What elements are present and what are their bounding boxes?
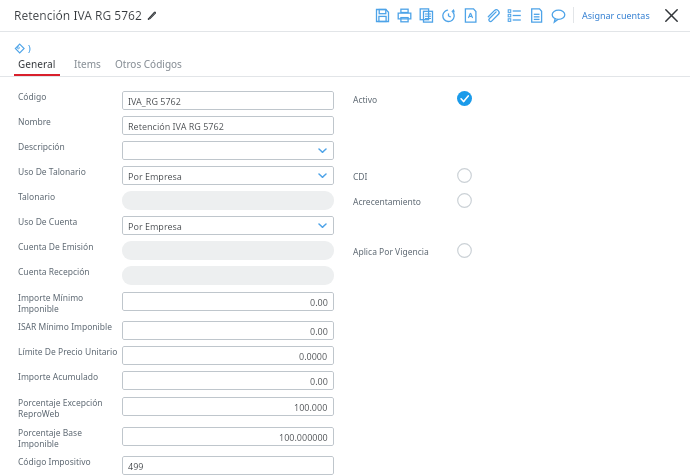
- staticText: Acrecentamiento: [353, 196, 422, 208]
- button[interactable]: [122, 141, 334, 160]
- button[interactable]: Items: [74, 57, 101, 71]
- button[interactable]: CDI: [457, 168, 472, 183]
- staticText: CDI: [353, 171, 368, 183]
- button[interactable]: Aplica Por Vigencia: [457, 243, 472, 258]
- staticText: Por Empresa: [128, 170, 182, 182]
- staticText: Items: [74, 57, 101, 71]
- staticText: Cuenta De Emisión: [18, 241, 94, 253]
- button[interactable]: Copiar: [415, 4, 437, 26]
- button[interactable]: Por Empresa: [122, 166, 334, 185]
- staticText: Retención IVA RG 5762: [128, 120, 224, 132]
- button[interactable]: Editar título: [146, 10, 157, 21]
- button[interactable]: Cerrar: [660, 4, 682, 26]
- button[interactable]: Asignar cuentas: [582, 9, 650, 21]
- staticText: ): [28, 42, 31, 54]
- button[interactable]: 100.000000: [122, 427, 334, 446]
- staticText: Aplica Por Vigencia: [353, 246, 429, 258]
- button[interactable]: Notas: [525, 4, 547, 26]
- staticText: Importe Acumulado: [18, 371, 99, 383]
- staticText: 100.000000: [279, 431, 328, 443]
- staticText: 0.0000: [299, 350, 328, 362]
- button[interactable]: 0.0000: [122, 346, 334, 365]
- staticText: 0.00: [310, 375, 328, 387]
- button[interactable]: 499: [122, 456, 334, 475]
- button[interactable]: Historial: [437, 4, 459, 26]
- button[interactable]: Otros Códigos: [115, 57, 182, 71]
- staticText: Otros Códigos: [115, 57, 182, 71]
- button[interactable]: Documento: [459, 4, 481, 26]
- staticText: Importe Mínimo Imponible: [18, 292, 84, 314]
- button[interactable]: 0.00: [122, 371, 334, 390]
- button[interactable]: Lista: [503, 4, 525, 26]
- button[interactable]: Retención IVA RG 5762: [122, 116, 334, 135]
- staticText: Código Impositivo: [18, 456, 91, 468]
- staticText: Asignar cuentas: [582, 9, 650, 21]
- staticText: Activo: [353, 94, 378, 106]
- button[interactable]: Por Empresa: [122, 216, 334, 235]
- button[interactable]: 100.000: [122, 397, 334, 416]
- staticText: Nombre: [18, 116, 51, 128]
- button[interactable]: Comentarios: [547, 4, 569, 26]
- staticText: Porcentaje Base Imponible: [18, 427, 82, 449]
- button[interactable]: Guardar: [371, 4, 393, 26]
- staticText: ISAR Mínimo Imponible: [18, 321, 112, 333]
- button[interactable]: Activo: [457, 91, 472, 106]
- staticText: 0.00: [310, 325, 328, 337]
- staticText: 0.00: [310, 296, 328, 308]
- button[interactable]: IVA_RG 5762: [122, 91, 334, 110]
- staticText: Descripción: [18, 141, 65, 153]
- button[interactable]: 0.00: [122, 292, 334, 311]
- staticText: Talonario: [18, 191, 56, 203]
- staticText: 499: [128, 460, 144, 472]
- staticText: 100.000: [294, 401, 328, 413]
- button[interactable]: Acrecentamiento: [457, 193, 472, 208]
- staticText: Límite De Precio Unitario: [18, 346, 118, 358]
- button[interactable]: Adjuntar: [481, 4, 503, 26]
- staticText: Uso De Cuenta: [18, 216, 78, 228]
- staticText: Porcentaje Excepción ReproWeb: [18, 397, 103, 419]
- button[interactable]: Imprimir: [393, 4, 415, 26]
- staticText: IVA_RG 5762: [128, 95, 181, 107]
- staticText: General: [18, 57, 56, 71]
- staticText: Uso De Talonario: [18, 166, 86, 178]
- button[interactable]: General: [18, 57, 56, 71]
- staticText: Por Empresa: [128, 220, 182, 232]
- staticText: Retención IVA RG 5762: [14, 7, 142, 23]
- staticText: Código: [18, 91, 47, 103]
- button[interactable]: 0.00: [122, 321, 334, 340]
- staticText: Cuenta Recepción: [18, 266, 90, 278]
